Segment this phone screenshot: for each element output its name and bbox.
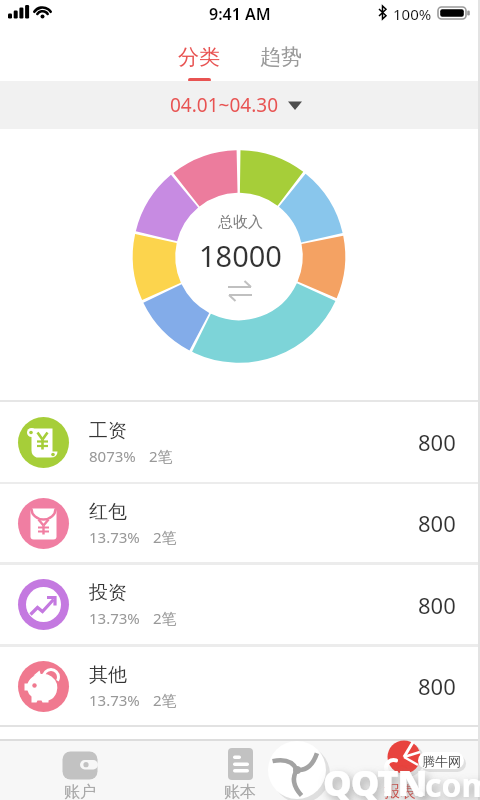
button[interactable]: 红包 — [0, 484, 480, 562]
staticText: 总收入 — [218, 213, 263, 232]
staticText: 投资 — [89, 581, 127, 605]
staticText: 2笔 — [153, 527, 177, 547]
staticText: 红包 — [89, 500, 127, 524]
staticText: 账本 — [224, 782, 256, 800]
staticText: 04.01~04.30 — [170, 92, 278, 118]
staticText: 工资 — [89, 419, 127, 443]
button[interactable]: 投资 — [0, 565, 480, 644]
button[interactable]: 趋势 — [260, 44, 302, 82]
staticText: .com — [416, 763, 480, 800]
staticText: 13.73% — [89, 690, 140, 710]
button[interactable]: 报表 — [320, 741, 480, 800]
button[interactable]: 04.01~04.30 — [0, 81, 480, 129]
staticText: 趋势 — [260, 44, 302, 70]
staticText: 报表 — [384, 782, 416, 800]
button[interactable]: 分类 — [178, 44, 220, 82]
staticText: 其他 — [89, 663, 127, 687]
staticText: 13.73% — [89, 608, 140, 628]
button[interactable]: 其他 — [0, 647, 480, 725]
staticText: 800 — [418, 671, 456, 701]
button[interactable]: 工资 — [0, 402, 480, 482]
staticText: 2笔 — [153, 690, 177, 710]
staticText: 800 — [418, 590, 456, 620]
staticText: 2笔 — [153, 608, 177, 628]
staticText: 800 — [418, 427, 456, 457]
button[interactable]: 账本 — [160, 741, 320, 800]
staticText: 8073% — [89, 446, 136, 466]
staticText: 800 — [418, 508, 456, 538]
staticText: 100% — [393, 4, 432, 24]
staticText: 18000 — [199, 236, 282, 275]
staticText: 13.73% — [89, 527, 140, 547]
staticText: 9:41 AM — [209, 3, 271, 25]
staticText: 2笔 — [149, 446, 173, 466]
staticText: 分类 — [178, 44, 220, 70]
staticText: QQTN — [323, 758, 427, 800]
button[interactable]: 账户 — [0, 741, 160, 800]
staticText: 腾牛网 — [422, 753, 461, 769]
staticText: 账户 — [64, 782, 96, 800]
